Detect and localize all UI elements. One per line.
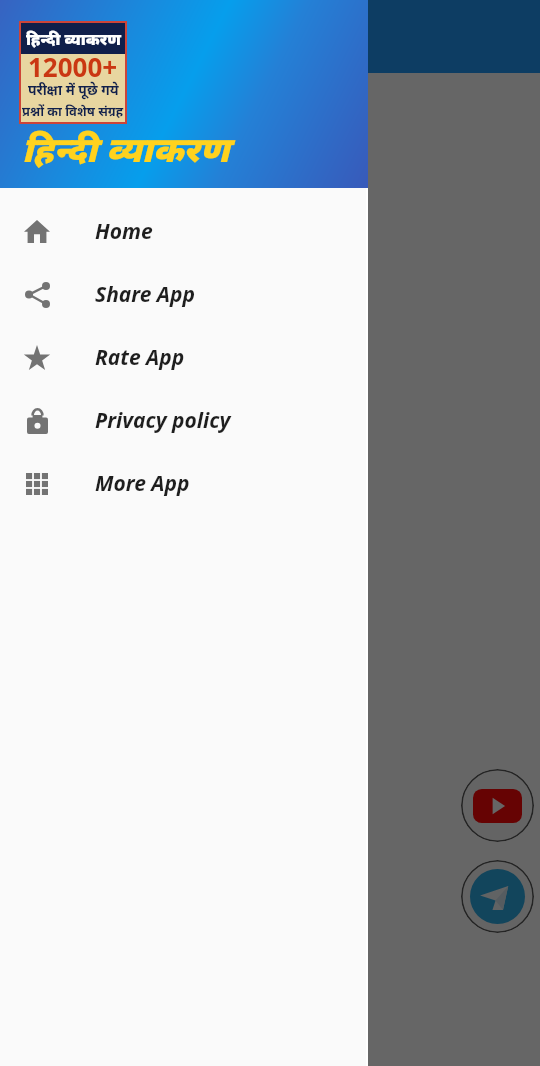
button[interactable]: YouTube channel bbox=[461, 769, 534, 842]
button[interactable]: Share App bbox=[0, 263, 368, 326]
button[interactable]: More App bbox=[0, 452, 368, 515]
button[interactable]: Privacy policy bbox=[0, 389, 368, 452]
staticText: हिन्दी व्याकरण bbox=[26, 28, 121, 50]
staticText: Rate App bbox=[95, 343, 185, 372]
staticText: 12000+ bbox=[28, 49, 118, 84]
button[interactable]: Telegram channel bbox=[461, 860, 534, 933]
staticText: प्रश्नों का विशेष संग्रह bbox=[22, 102, 124, 120]
staticText: Share App bbox=[95, 280, 196, 309]
button[interactable]: Home bbox=[0, 200, 368, 263]
staticText: परीक्षा में पूछे गये bbox=[28, 80, 119, 99]
button[interactable]: Rate App bbox=[0, 326, 368, 389]
staticText: Privacy policy bbox=[95, 406, 231, 435]
staticText: Home bbox=[95, 217, 153, 246]
staticText: हिन्दी व्याकरण bbox=[22, 125, 230, 173]
staticText: More App bbox=[95, 469, 190, 498]
